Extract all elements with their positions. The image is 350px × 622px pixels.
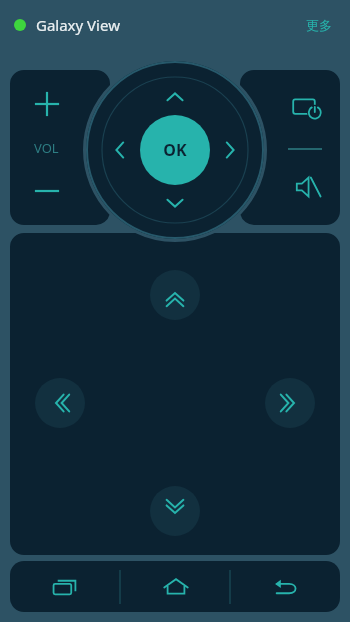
button[interactable]: Mute xyxy=(294,173,322,201)
button[interactable]: Fast forward xyxy=(270,383,310,423)
button[interactable]: Recents xyxy=(10,561,120,612)
button[interactable]: OK xyxy=(140,115,210,185)
staticText: OK xyxy=(163,139,187,161)
other: Volume up xyxy=(34,91,60,117)
button[interactable]: Left xyxy=(100,130,140,170)
button[interactable]: Page up xyxy=(155,277,195,317)
staticText: 更多 xyxy=(306,17,332,33)
staticText: Galaxy View xyxy=(36,15,120,35)
button[interactable]: Rewind xyxy=(40,383,80,423)
button[interactable]: Page down xyxy=(155,489,195,529)
button[interactable]: Up xyxy=(155,77,195,117)
button[interactable]: Right xyxy=(210,130,250,170)
button[interactable]: Volume up xyxy=(10,70,110,225)
button[interactable]: Home xyxy=(121,561,230,612)
button[interactable]: TV power xyxy=(292,94,322,124)
staticText: VOL xyxy=(34,139,59,157)
button[interactable]: Page up xyxy=(10,233,340,555)
button[interactable]: Down xyxy=(155,183,195,223)
other: Volume down xyxy=(34,178,60,204)
button[interactable]: Back xyxy=(231,561,340,612)
button[interactable]: 更多 xyxy=(302,13,336,37)
